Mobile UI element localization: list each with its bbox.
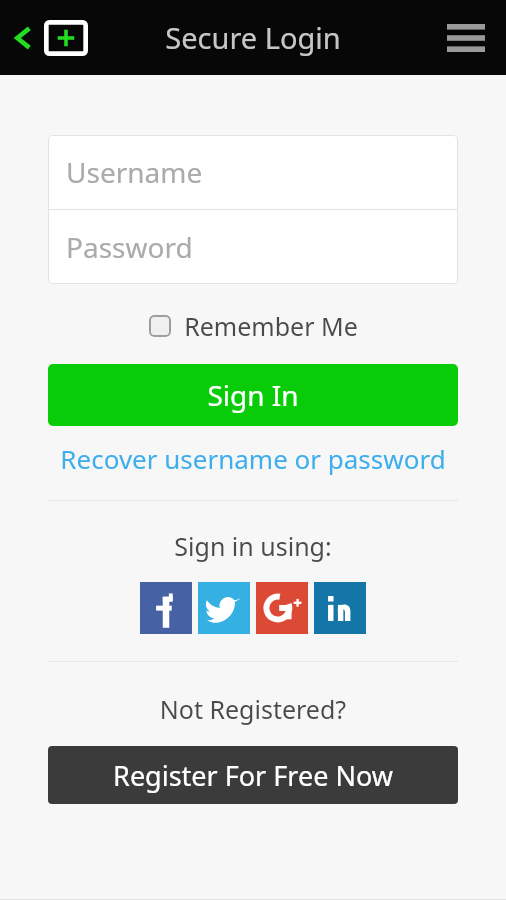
staticText: Register For Free Now [113,757,393,794]
staticText: Secure Login [165,18,341,57]
button[interactable]: Remember Me [143,305,364,347]
staticText: Sign In [207,376,299,414]
button[interactable]: Add device [40,12,92,64]
staticText: Password [66,228,193,266]
button[interactable]: Register For Free Now [48,746,458,804]
button[interactable]: Sign in with Twitter [198,582,250,634]
button[interactable]: Sign In [48,364,458,426]
staticText: Not Registered? [0,692,506,726]
staticText: Remember Me [184,309,358,343]
button[interactable]: Recover username or password [0,441,506,476]
staticText: Username [66,153,203,191]
button[interactable]: Sign in with Facebook [140,582,192,634]
button[interactable]: Menu [440,12,492,64]
button[interactable]: Password [48,210,458,284]
staticText: Sign in using: [0,529,506,563]
staticText: Recover username or password [60,441,446,476]
button[interactable]: Sign in with LinkedIn [314,582,366,634]
button[interactable]: Sign in with Google Plus [256,582,308,634]
button[interactable]: Username [48,135,458,209]
button[interactable]: Back [4,18,44,58]
